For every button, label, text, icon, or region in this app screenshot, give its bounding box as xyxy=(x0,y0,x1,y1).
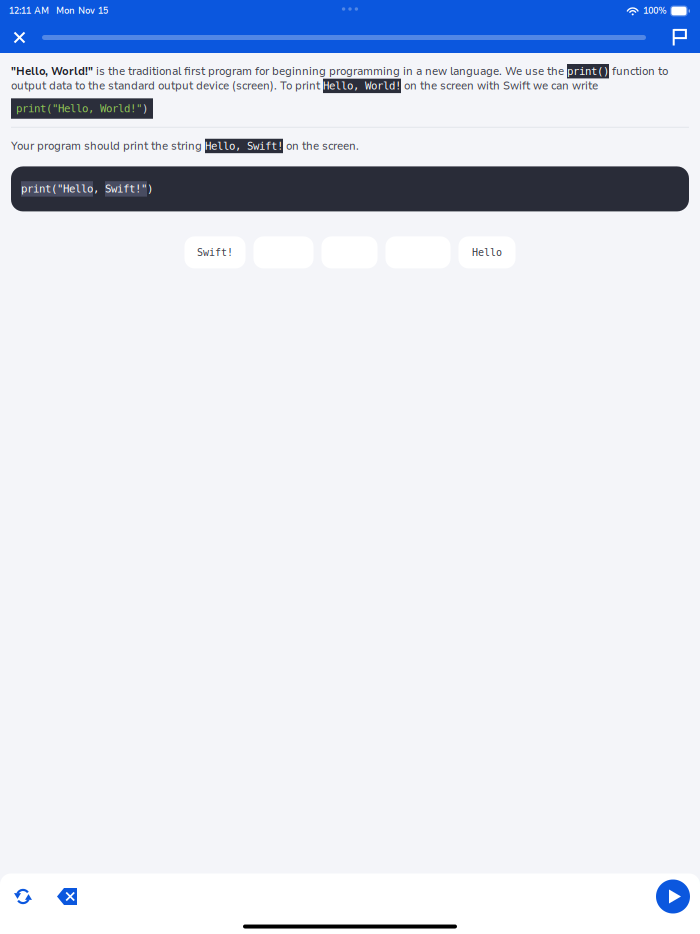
staticText: Swift! xyxy=(197,247,233,258)
staticText: "Hello, World!" xyxy=(11,64,93,79)
staticText: 100% xyxy=(643,5,666,17)
staticText: print() xyxy=(567,65,609,77)
button[interactable]: Close xyxy=(7,24,32,50)
staticText: output data to the standard output devic… xyxy=(11,79,323,93)
button[interactable]: Swift! xyxy=(184,236,245,268)
staticText: Swift!" xyxy=(105,183,147,195)
staticText: "Hello xyxy=(57,183,93,195)
staticText: ) xyxy=(147,183,153,195)
button[interactable]: Run code xyxy=(651,876,695,916)
button[interactable]: Delete last token xyxy=(46,876,88,916)
staticText: , xyxy=(93,183,105,195)
staticText: Mon Nov 15 xyxy=(56,5,108,17)
staticText: is the traditional first program for beg… xyxy=(93,64,567,79)
button[interactable]: Report an issue xyxy=(668,24,692,50)
staticText: "Hello, World!" xyxy=(52,102,142,115)
staticText: Hello, Swift! xyxy=(205,140,283,152)
staticText: Your program should print the string xyxy=(11,139,205,153)
staticText: Hello, World! xyxy=(323,80,401,92)
staticText: print( xyxy=(16,102,52,115)
button[interactable]: Reset code xyxy=(0,876,46,916)
staticText: print( xyxy=(21,183,57,195)
staticText: Hello xyxy=(472,247,502,258)
staticText: on the screen. xyxy=(283,139,359,153)
staticText: 12:11 AM xyxy=(9,5,49,17)
staticText: function to xyxy=(609,64,668,79)
button[interactable]: Hello xyxy=(458,236,515,268)
staticText: on the screen with Swift we can write xyxy=(401,79,598,93)
staticText: ) xyxy=(142,102,148,115)
